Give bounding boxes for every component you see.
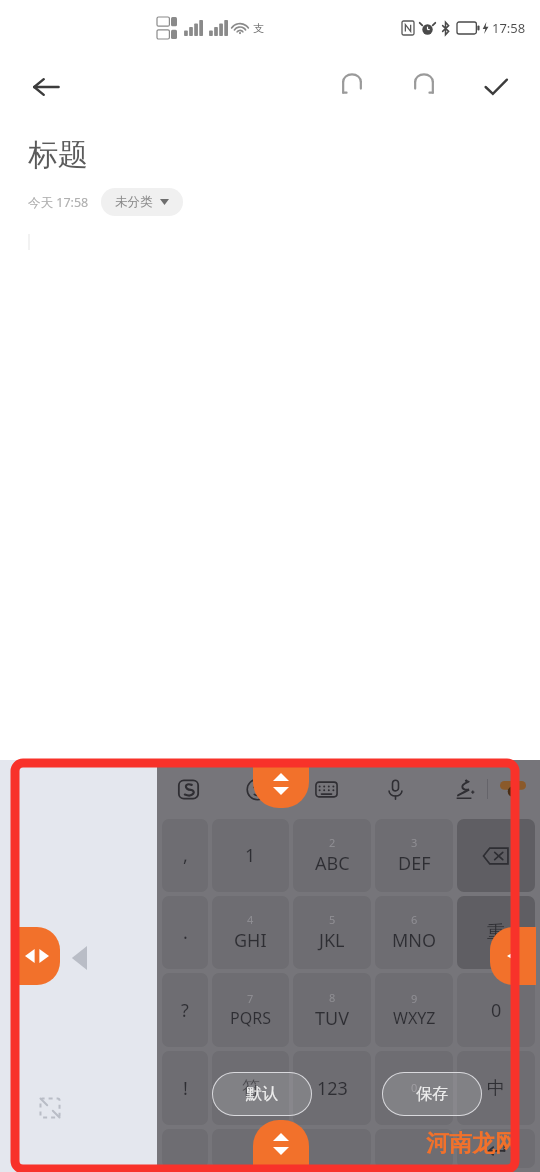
staticText: 5: [329, 912, 336, 927]
button[interactable]: 123: [293, 1051, 371, 1125]
button[interactable]: Keyboard tool: [496, 772, 530, 806]
staticText: 符: [242, 1077, 260, 1100]
staticText: .: [183, 920, 188, 945]
staticText: 今天 17:58: [28, 194, 89, 211]
button[interactable]: Keyboard tool: [447, 772, 481, 806]
button[interactable]: 7: [212, 973, 289, 1047]
staticText: 0: [491, 998, 502, 1023]
button[interactable]: [162, 1129, 208, 1168]
staticText: 支: [253, 21, 264, 35]
staticText: 1: [245, 843, 256, 868]
button[interactable]: 语音: [329, 1093, 421, 1149]
staticText: MNO: [392, 928, 437, 953]
staticText: 2: [329, 835, 336, 850]
staticText: 图片: [258, 1130, 282, 1145]
button[interactable]: 8: [293, 973, 371, 1047]
button[interactable]: 手写: [435, 1093, 527, 1149]
staticText: 17:58: [492, 19, 526, 37]
button[interactable]: 9: [375, 973, 453, 1047]
staticText: 7: [247, 991, 254, 1006]
button[interactable]: 未分类: [101, 188, 183, 216]
button[interactable]: Resize vertically: [253, 760, 309, 808]
button[interactable]: 3: [375, 819, 453, 892]
staticText: 未分类: [115, 194, 153, 210]
staticText: 样式: [153, 1130, 177, 1145]
staticText: ?: [181, 998, 189, 1023]
button[interactable]: 5: [293, 896, 371, 969]
button[interactable]: Done: [472, 63, 520, 111]
staticText: 6: [411, 912, 418, 927]
button[interactable]: 默认: [212, 1072, 312, 1116]
button[interactable]: 样式: [119, 1093, 211, 1149]
button[interactable]: 0: [457, 973, 535, 1047]
button[interactable]: 2: [293, 819, 371, 892]
button[interactable]: [457, 819, 535, 892]
staticText: 语音: [363, 1130, 387, 1145]
button[interactable]: Keyboard tool: [378, 772, 412, 806]
button[interactable]: 4: [212, 896, 289, 969]
staticText: !: [183, 1076, 188, 1101]
staticText: 4: [247, 912, 254, 927]
staticText: 重: [487, 921, 505, 944]
staticText: 河南龙网: [426, 1129, 518, 1158]
button[interactable]: 清单: [13, 1093, 105, 1149]
button[interactable]: Keyboard tool: [171, 772, 205, 806]
button[interactable]: Keyboard tool: [240, 772, 274, 806]
button[interactable]: !: [162, 1051, 208, 1125]
button[interactable]: [293, 1129, 371, 1168]
staticText: 标题: [28, 136, 88, 174]
button[interactable]: 1: [212, 819, 289, 892]
staticText: GHI: [234, 928, 267, 953]
button[interactable]: Redo: [400, 63, 448, 111]
button[interactable]: 符: [212, 1051, 289, 1125]
button[interactable]: Keyboard tool: [309, 772, 343, 806]
staticText: 保存: [416, 1084, 448, 1104]
button[interactable]: 6: [375, 896, 453, 969]
staticText: 默认: [246, 1084, 278, 1104]
button[interactable]: Undo: [328, 63, 376, 111]
button[interactable]: [212, 1129, 289, 1168]
staticText: TUV: [315, 1006, 349, 1031]
button[interactable]: 重: [457, 896, 535, 969]
staticText: 123: [317, 1076, 348, 1101]
staticText: ,: [183, 843, 188, 868]
staticText: ABC: [315, 851, 350, 876]
button[interactable]: ?: [162, 973, 208, 1047]
staticText: 手写: [469, 1130, 493, 1145]
staticText: 3: [411, 835, 418, 850]
button[interactable]: [375, 1129, 453, 1168]
staticText: WXYZ: [393, 1007, 436, 1029]
staticText: 0: [411, 1080, 418, 1095]
staticText: JKL: [319, 928, 345, 953]
staticText: 8: [329, 990, 336, 1005]
button[interactable]: 保存: [382, 1072, 482, 1116]
button[interactable]: [457, 1129, 535, 1168]
button[interactable]: Resize horizontally: [14, 927, 60, 985]
button[interactable]: Resize vertically: [253, 1120, 309, 1168]
button[interactable]: 中: [457, 1051, 535, 1125]
staticText: DEF: [398, 851, 431, 876]
button[interactable]: Back: [22, 63, 70, 111]
button[interactable]: 0: [375, 1051, 453, 1125]
staticText: 中: [487, 1077, 505, 1100]
staticText: PQRS: [230, 1007, 271, 1029]
staticText: 9: [411, 991, 418, 1006]
button[interactable]: Resize horizontally: [490, 927, 536, 985]
button[interactable]: 图片: [224, 1093, 316, 1149]
